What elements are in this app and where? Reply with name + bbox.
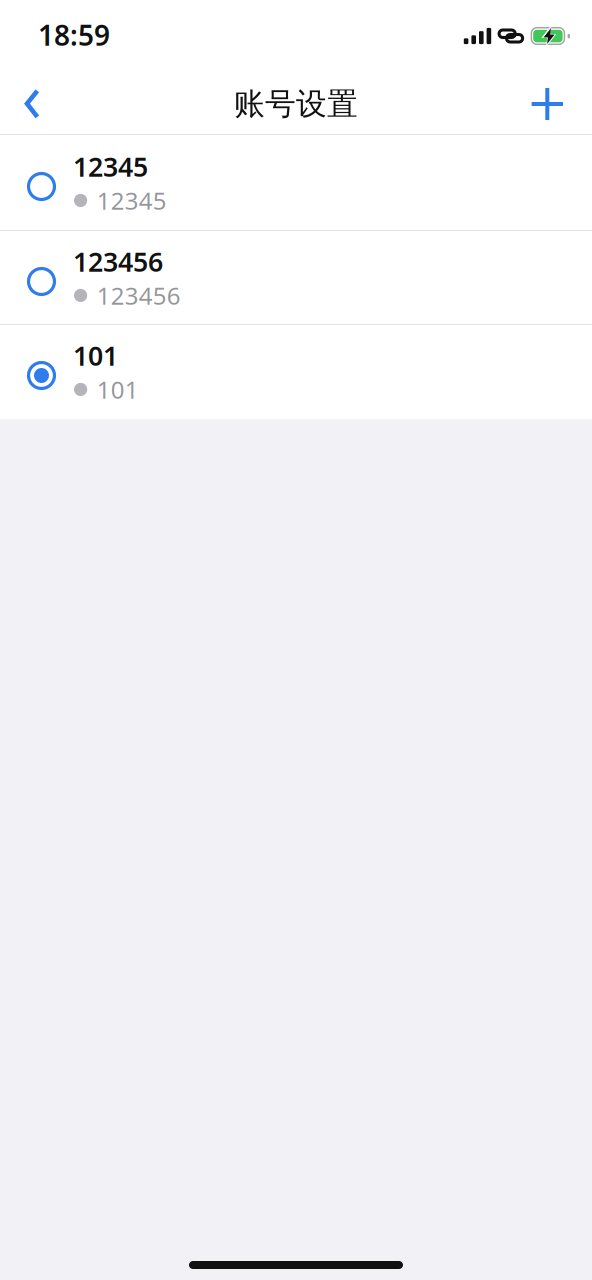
staticText: 123456 xyxy=(97,279,181,311)
staticText: 18:59 xyxy=(38,16,110,54)
button[interactable]: 12345 xyxy=(0,135,592,230)
button[interactable]: Add account xyxy=(518,72,592,136)
staticText: 账号设置 xyxy=(234,85,358,123)
button[interactable]: 123456 xyxy=(0,231,592,324)
staticText: 101 xyxy=(97,373,139,405)
button[interactable]: 101 xyxy=(0,325,592,418)
button[interactable]: Back xyxy=(0,72,53,136)
staticText: 12345 xyxy=(73,149,148,184)
staticText: 101 xyxy=(73,338,118,373)
staticText: 12345 xyxy=(97,184,167,216)
staticText: 123456 xyxy=(73,244,163,279)
